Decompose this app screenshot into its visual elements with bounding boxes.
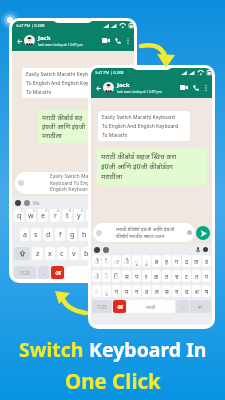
button[interactable]: ब: [152, 255, 161, 267]
button[interactable]: ू: [132, 255, 141, 267]
button[interactable]: Send: [196, 226, 210, 240]
button[interactable]: x: [45, 247, 55, 260]
button[interactable]: थ: [182, 285, 191, 297]
button[interactable]: 5: [62, 209, 72, 222]
button[interactable]: ग: [202, 270, 211, 282]
button[interactable]: त: [192, 270, 201, 282]
button[interactable]: a: [20, 228, 29, 241]
staticText: s: [34, 230, 38, 240]
button[interactable]: g: [67, 228, 77, 241]
staticText: थ: [185, 288, 189, 295]
staticText: अ: [55, 268, 61, 278]
button[interactable]: र: [142, 270, 151, 282]
button[interactable]: स: [162, 285, 171, 297]
button[interactable]: .: [176, 300, 189, 313]
button[interactable]: श: [192, 285, 201, 297]
button[interactable]: स: [122, 270, 131, 282]
button[interactable]: े: [102, 270, 111, 282]
button[interactable]: c: [57, 247, 67, 260]
button[interactable]: 7: [86, 209, 96, 222]
button[interactable]: Back: [15, 37, 23, 45]
button[interactable]: 3: [38, 209, 48, 222]
button[interactable]: ?123: [14, 266, 36, 279]
button[interactable]: क: [152, 270, 161, 282]
button[interactable]: Backspace: [117, 247, 132, 260]
button[interactable]: More options: [124, 37, 131, 44]
button[interactable]: ृ: [102, 285, 111, 297]
button[interactable]: Switch keyboard: [113, 300, 126, 313]
button[interactable]: य: [172, 285, 181, 297]
button[interactable]: ट: [182, 270, 191, 282]
button[interactable]: मराठी: [127, 300, 175, 313]
button[interactable]: ?123: [92, 300, 112, 313]
staticText: ब: [155, 258, 159, 265]
button[interactable]: d: [43, 228, 53, 241]
button[interactable]: ि: [112, 270, 121, 282]
button[interactable]: Back: [94, 84, 102, 92]
button[interactable]: प: [132, 270, 141, 282]
button[interactable]: 4: [50, 209, 60, 222]
button[interactable]: ा: [112, 255, 121, 267]
button[interactable]: ु: [142, 255, 151, 267]
staticText: ै: [105, 258, 109, 265]
button[interactable]: ै: [102, 255, 111, 267]
button[interactable]: Call: [112, 35, 123, 46]
button[interactable]: च: [172, 270, 181, 282]
button[interactable]: व: [142, 285, 151, 297]
button[interactable]: j: [91, 228, 101, 241]
button[interactable]: More options: [202, 84, 209, 91]
button[interactable]: Switch keyboard: [51, 266, 64, 279]
button[interactable]: ौ: [92, 255, 101, 267]
button[interactable]: द: [182, 255, 191, 267]
button[interactable]: ं: [92, 285, 101, 297]
staticText: ,: [43, 269, 45, 277]
button[interactable]: ी: [122, 255, 131, 267]
button[interactable]: ल: [152, 285, 161, 297]
button[interactable]: ग: [112, 285, 121, 297]
button[interactable]: ो: [92, 270, 101, 282]
button[interactable]: ष: [202, 285, 211, 297]
button[interactable]: Video call: [100, 35, 111, 46]
button[interactable]: ,: [38, 266, 49, 279]
button[interactable]: s: [31, 228, 41, 241]
button[interactable]: Call: [190, 82, 201, 93]
button[interactable]: b: [81, 247, 91, 260]
button[interactable]: f: [55, 228, 65, 241]
staticText: ु: [145, 258, 149, 265]
button[interactable]: Shift: [14, 247, 30, 260]
button[interactable]: m: [105, 247, 115, 260]
staticText: q: [17, 211, 22, 221]
button[interactable]: l: [115, 228, 125, 241]
button[interactable]: z: [32, 247, 43, 260]
button[interactable]: n: [93, 247, 103, 260]
button[interactable]: ज: [192, 255, 201, 267]
staticText: e: [41, 211, 45, 221]
button[interactable]: ग: [172, 255, 181, 267]
button[interactable]: h: [79, 228, 89, 241]
button[interactable]: ड: [202, 255, 211, 267]
button[interactable]: ह: [162, 255, 171, 267]
button[interactable]: v: [69, 247, 79, 260]
button[interactable]: 1: [14, 209, 24, 222]
button[interactable]: ↵: [190, 300, 211, 313]
button[interactable]: 6: [74, 209, 84, 222]
staticText: c: [60, 249, 64, 259]
staticText: ?123: [97, 304, 107, 310]
button[interactable]: त: [162, 270, 171, 282]
staticText: द: [185, 258, 188, 265]
button[interactable]: 2: [26, 209, 36, 222]
staticText: v: [72, 249, 76, 259]
button[interactable]: [66, 266, 132, 279]
button[interactable]: न: [132, 285, 141, 297]
button[interactable]: Video call: [178, 82, 189, 93]
staticText: d: [46, 230, 51, 240]
button[interactable]: म: [122, 285, 131, 297]
staticText: Jack: [38, 34, 51, 42]
staticText: .: [182, 303, 184, 311]
